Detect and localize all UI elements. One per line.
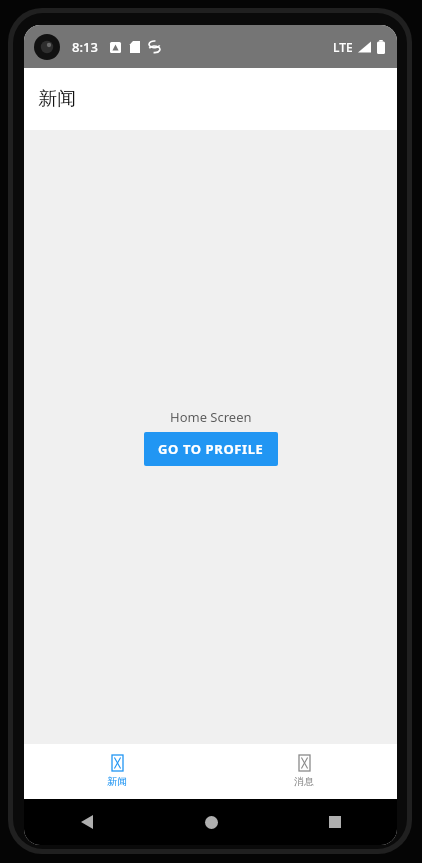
button[interactable]: Recents <box>318 805 352 839</box>
staticText: GO TO PROFILE <box>158 440 264 458</box>
button[interactable]: Home <box>194 805 228 839</box>
other: 新闻 <box>112 755 123 771</box>
button[interactable]: 消息 <box>210 744 397 799</box>
staticText: 8:13 <box>72 38 98 56</box>
staticText: 消息 <box>294 775 314 788</box>
button[interactable]: GO TO PROFILE <box>144 432 278 466</box>
button[interactable]: Back <box>70 805 104 839</box>
staticText: 新闻 <box>38 87 76 111</box>
button[interactable]: 新闻 <box>24 744 210 799</box>
staticText: LTE <box>333 39 353 55</box>
other: 消息 <box>299 755 310 771</box>
staticText: 新闻 <box>107 775 127 788</box>
staticText: Home Screen <box>170 408 252 426</box>
